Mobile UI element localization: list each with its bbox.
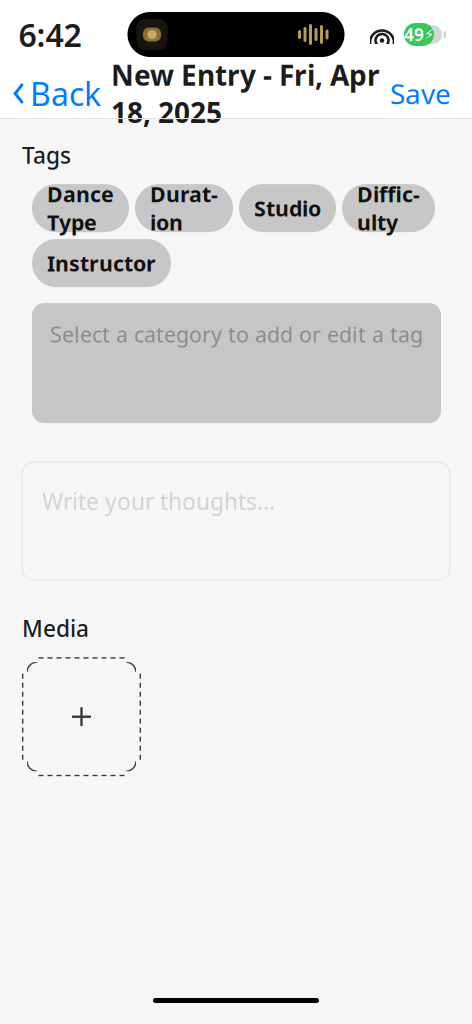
staticText: New Entry - Fri, Apr 18, 2025 [111,56,380,131]
button[interactable]: Duration [135,184,233,232]
button[interactable]: Studio [239,184,336,232]
staticText: Duration [150,180,218,236]
staticText: ⚡︎ [424,26,434,43]
staticText: Back [30,72,101,115]
button[interactable]: Write your thoughts... [22,462,450,580]
button[interactable]: Save [390,67,472,120]
staticText: Instructor [47,249,156,277]
staticText: Select a category to add or edit a tag [50,320,423,348]
staticText: Dance Type [47,180,114,236]
staticText: Write your thoughts... [42,486,275,516]
button[interactable]: Add media [22,657,141,776]
staticText: Difficulty [357,180,420,236]
staticText: 49 [404,23,424,46]
staticText: Media [22,613,89,643]
button[interactable]: Dance Type [32,184,129,232]
button[interactable]: Instructor [32,239,171,287]
staticText: 6:42 [18,13,81,56]
button[interactable]: Back [0,64,101,123]
staticText: Studio [254,194,321,222]
staticText: Save [390,75,451,112]
button[interactable]: Difficulty [342,184,435,232]
staticText: Tags [22,140,71,170]
button[interactable]: Select a category to add or edit a tag [32,303,441,423]
